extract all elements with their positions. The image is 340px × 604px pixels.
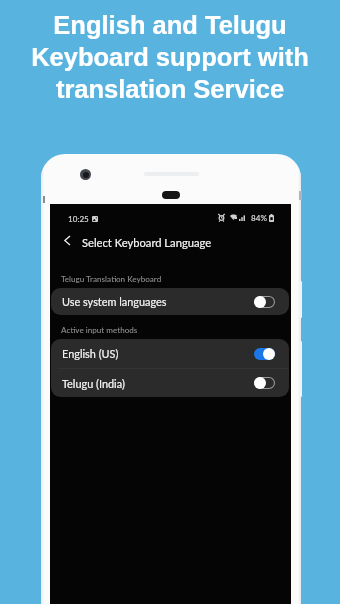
staticText: English and Telugu Keyboard support with…	[31, 11, 309, 103]
staticText: Telugu Translation Keyboard	[61, 274, 162, 284]
button[interactable]: Telugu (India)	[51, 369, 289, 397]
button[interactable]: Use system languages	[51, 288, 289, 315]
button[interactable]: Enabled	[254, 348, 275, 360]
button[interactable]: Disabled	[254, 296, 275, 308]
staticText: 10:25	[68, 214, 89, 224]
staticText: English (US)	[62, 347, 119, 360]
button[interactable]: Disabled	[254, 377, 275, 389]
staticText: Select Keyboard Language	[82, 236, 212, 249]
staticText: Use system languages	[62, 295, 167, 308]
staticText: 84%	[251, 213, 267, 223]
button[interactable]: Back	[58, 232, 75, 249]
staticText: Telugu (India)	[62, 377, 125, 390]
staticText: Active input methods	[61, 325, 138, 335]
button[interactable]: English (US)	[51, 339, 289, 368]
